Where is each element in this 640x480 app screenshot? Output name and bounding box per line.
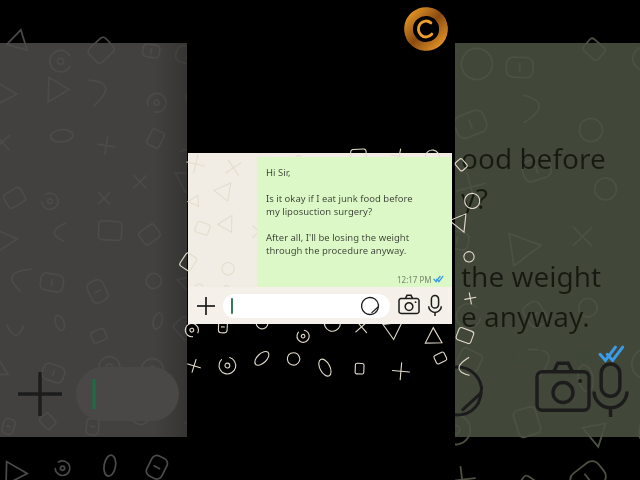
button[interactable]: Hi Sir, bbox=[257, 157, 452, 287]
staticText: y? bbox=[461, 179, 488, 217]
other: Camera bbox=[398, 295, 420, 317]
other: Camera bbox=[535, 363, 591, 419]
staticText: 12:17 PM bbox=[397, 274, 432, 285]
staticText: e anyway. bbox=[461, 297, 590, 335]
staticText: Is it okay if I eat junk food before bbox=[266, 192, 413, 205]
staticText: 12:17 PM bbox=[507, 341, 594, 368]
staticText: through the procedure anyway. bbox=[266, 244, 407, 257]
staticText: my liposuction surgery? bbox=[266, 205, 373, 218]
button[interactable] bbox=[0, 351, 187, 437]
button[interactable]: Channel logo bbox=[407, 10, 445, 48]
staticText: ood before bbox=[461, 139, 606, 177]
staticText: After all, I'll be losing the weight bbox=[266, 231, 410, 244]
other: Attach bbox=[195, 295, 217, 317]
other: Voice message bbox=[425, 296, 445, 316]
button[interactable] bbox=[223, 294, 390, 318]
button[interactable]: Camera bbox=[455, 345, 640, 437]
staticText: Hi Sir, bbox=[266, 166, 291, 179]
other: Voice message bbox=[591, 365, 630, 417]
button[interactable]: Attach bbox=[188, 287, 452, 324]
staticText: the weight bbox=[461, 257, 602, 295]
